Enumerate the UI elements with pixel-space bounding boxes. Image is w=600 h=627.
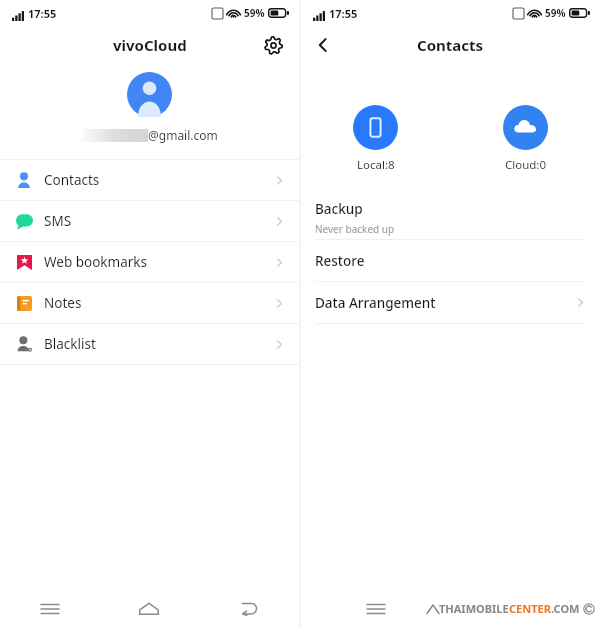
button[interactable]: SMS <box>0 201 299 242</box>
button[interactable]: Home <box>99 590 199 627</box>
button[interactable]: Back <box>199 590 299 627</box>
staticText: vivoCloud <box>113 35 187 55</box>
staticText: Local:8 <box>357 157 395 173</box>
staticText: Web bookmarks <box>44 253 148 271</box>
staticText: .COM <box>551 601 580 616</box>
staticText: Never backed up <box>315 222 395 236</box>
button[interactable]: Local:8 <box>349 101 402 177</box>
staticText: 17:55 <box>28 6 57 21</box>
staticText: @gmail.com <box>148 127 218 143</box>
button[interactable]: Blacklist <box>0 324 299 365</box>
button[interactable]: Recents <box>301 590 451 627</box>
button[interactable]: Data Arrangement <box>301 282 600 324</box>
staticText: Blacklist <box>44 335 96 353</box>
staticText: Data Arrangement <box>315 294 436 312</box>
button[interactable]: Recents <box>0 590 99 627</box>
button[interactable]: Web bookmarks <box>0 242 299 283</box>
staticText: SMS <box>44 212 72 230</box>
button[interactable]: Notes <box>0 283 299 324</box>
button[interactable]: Cloud:0 <box>499 101 552 177</box>
staticText: THAIMOBILE <box>439 601 509 616</box>
button[interactable]: Restore <box>301 240 600 282</box>
staticText: Restore <box>315 252 365 270</box>
button[interactable]: Backup <box>301 196 600 240</box>
button[interactable]: Contacts <box>0 160 299 201</box>
button[interactable]: Settings <box>257 29 289 61</box>
staticText: CENTER <box>509 601 551 616</box>
staticText: 17:55 <box>329 6 358 21</box>
staticText: Cloud:0 <box>505 157 547 173</box>
staticText: 59% <box>545 6 566 20</box>
staticText: Backup <box>315 200 363 218</box>
button[interactable]: Back <box>307 29 339 61</box>
staticText: 59% <box>244 6 265 20</box>
staticText: Notes <box>44 294 82 312</box>
staticText: Contacts <box>44 171 100 189</box>
staticText: Contacts <box>417 35 484 55</box>
